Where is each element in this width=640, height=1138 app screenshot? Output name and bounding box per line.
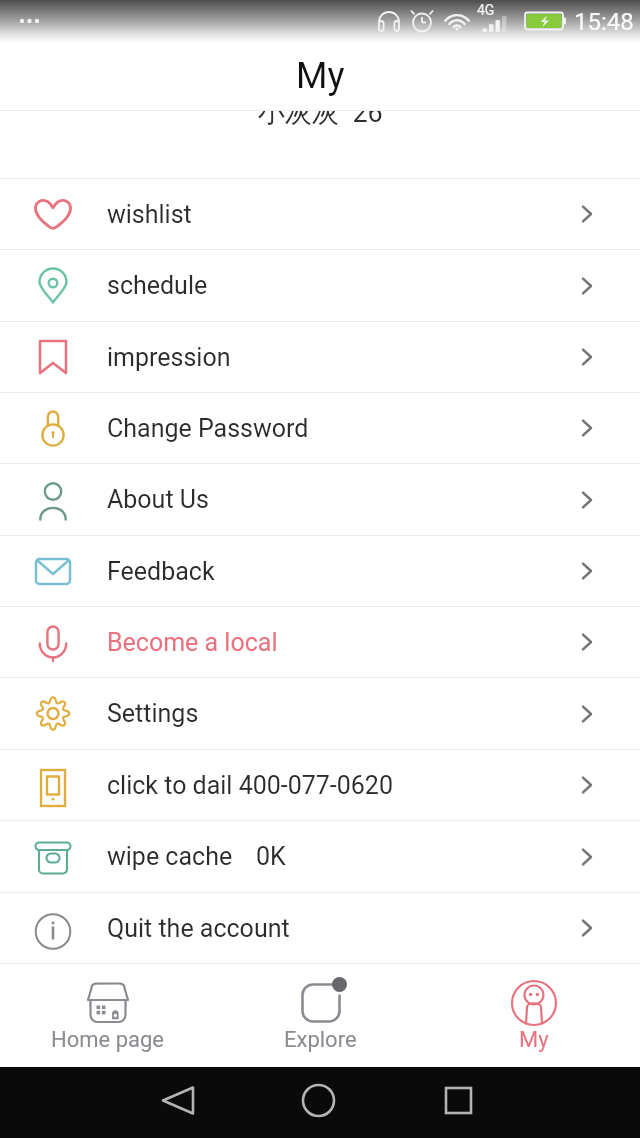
staticText: My — [296, 55, 345, 97]
button[interactable]: Become a local — [0, 607, 640, 677]
staticText: Settings — [107, 699, 199, 728]
button[interactable]: schedule — [0, 250, 640, 321]
staticText: 0K — [256, 842, 286, 871]
staticText: My — [519, 1027, 549, 1053]
button[interactable]: wishlist — [0, 179, 640, 249]
staticText: Home page — [51, 1027, 164, 1053]
button[interactable]: Explore — [214, 965, 427, 1067]
staticText: Feedback — [107, 557, 215, 586]
button[interactable]: Settings — [0, 678, 640, 749]
staticText: impression — [107, 343, 231, 372]
staticText: Change Password — [107, 414, 309, 443]
staticText: click to dail 400-077-0620 — [107, 771, 393, 800]
button[interactable]: About Us — [0, 464, 640, 535]
button[interactable]: My — [427, 965, 640, 1067]
staticText: Become a local — [107, 628, 278, 657]
staticText: 小灰灰 26 — [258, 111, 383, 130]
staticText: 15:48 — [574, 8, 634, 36]
button[interactable]: Quit the account — [0, 893, 640, 963]
button[interactable]: click to dail 400-077-0620 — [0, 750, 640, 820]
button[interactable]: Feedback — [0, 536, 640, 606]
staticText: schedule — [107, 271, 208, 300]
button[interactable]: Home page — [0, 965, 214, 1067]
staticText: wishlist — [107, 200, 192, 229]
button[interactable]: Change Password — [0, 393, 640, 463]
staticText: About Us — [107, 485, 209, 514]
button[interactable]: impression — [0, 322, 640, 392]
staticText: wipe cache — [107, 842, 233, 871]
staticText: Quit the account — [107, 914, 290, 943]
staticText: Explore — [284, 1027, 357, 1053]
button[interactable]: wipe cache — [0, 821, 640, 892]
staticText: 4G — [477, 2, 495, 18]
